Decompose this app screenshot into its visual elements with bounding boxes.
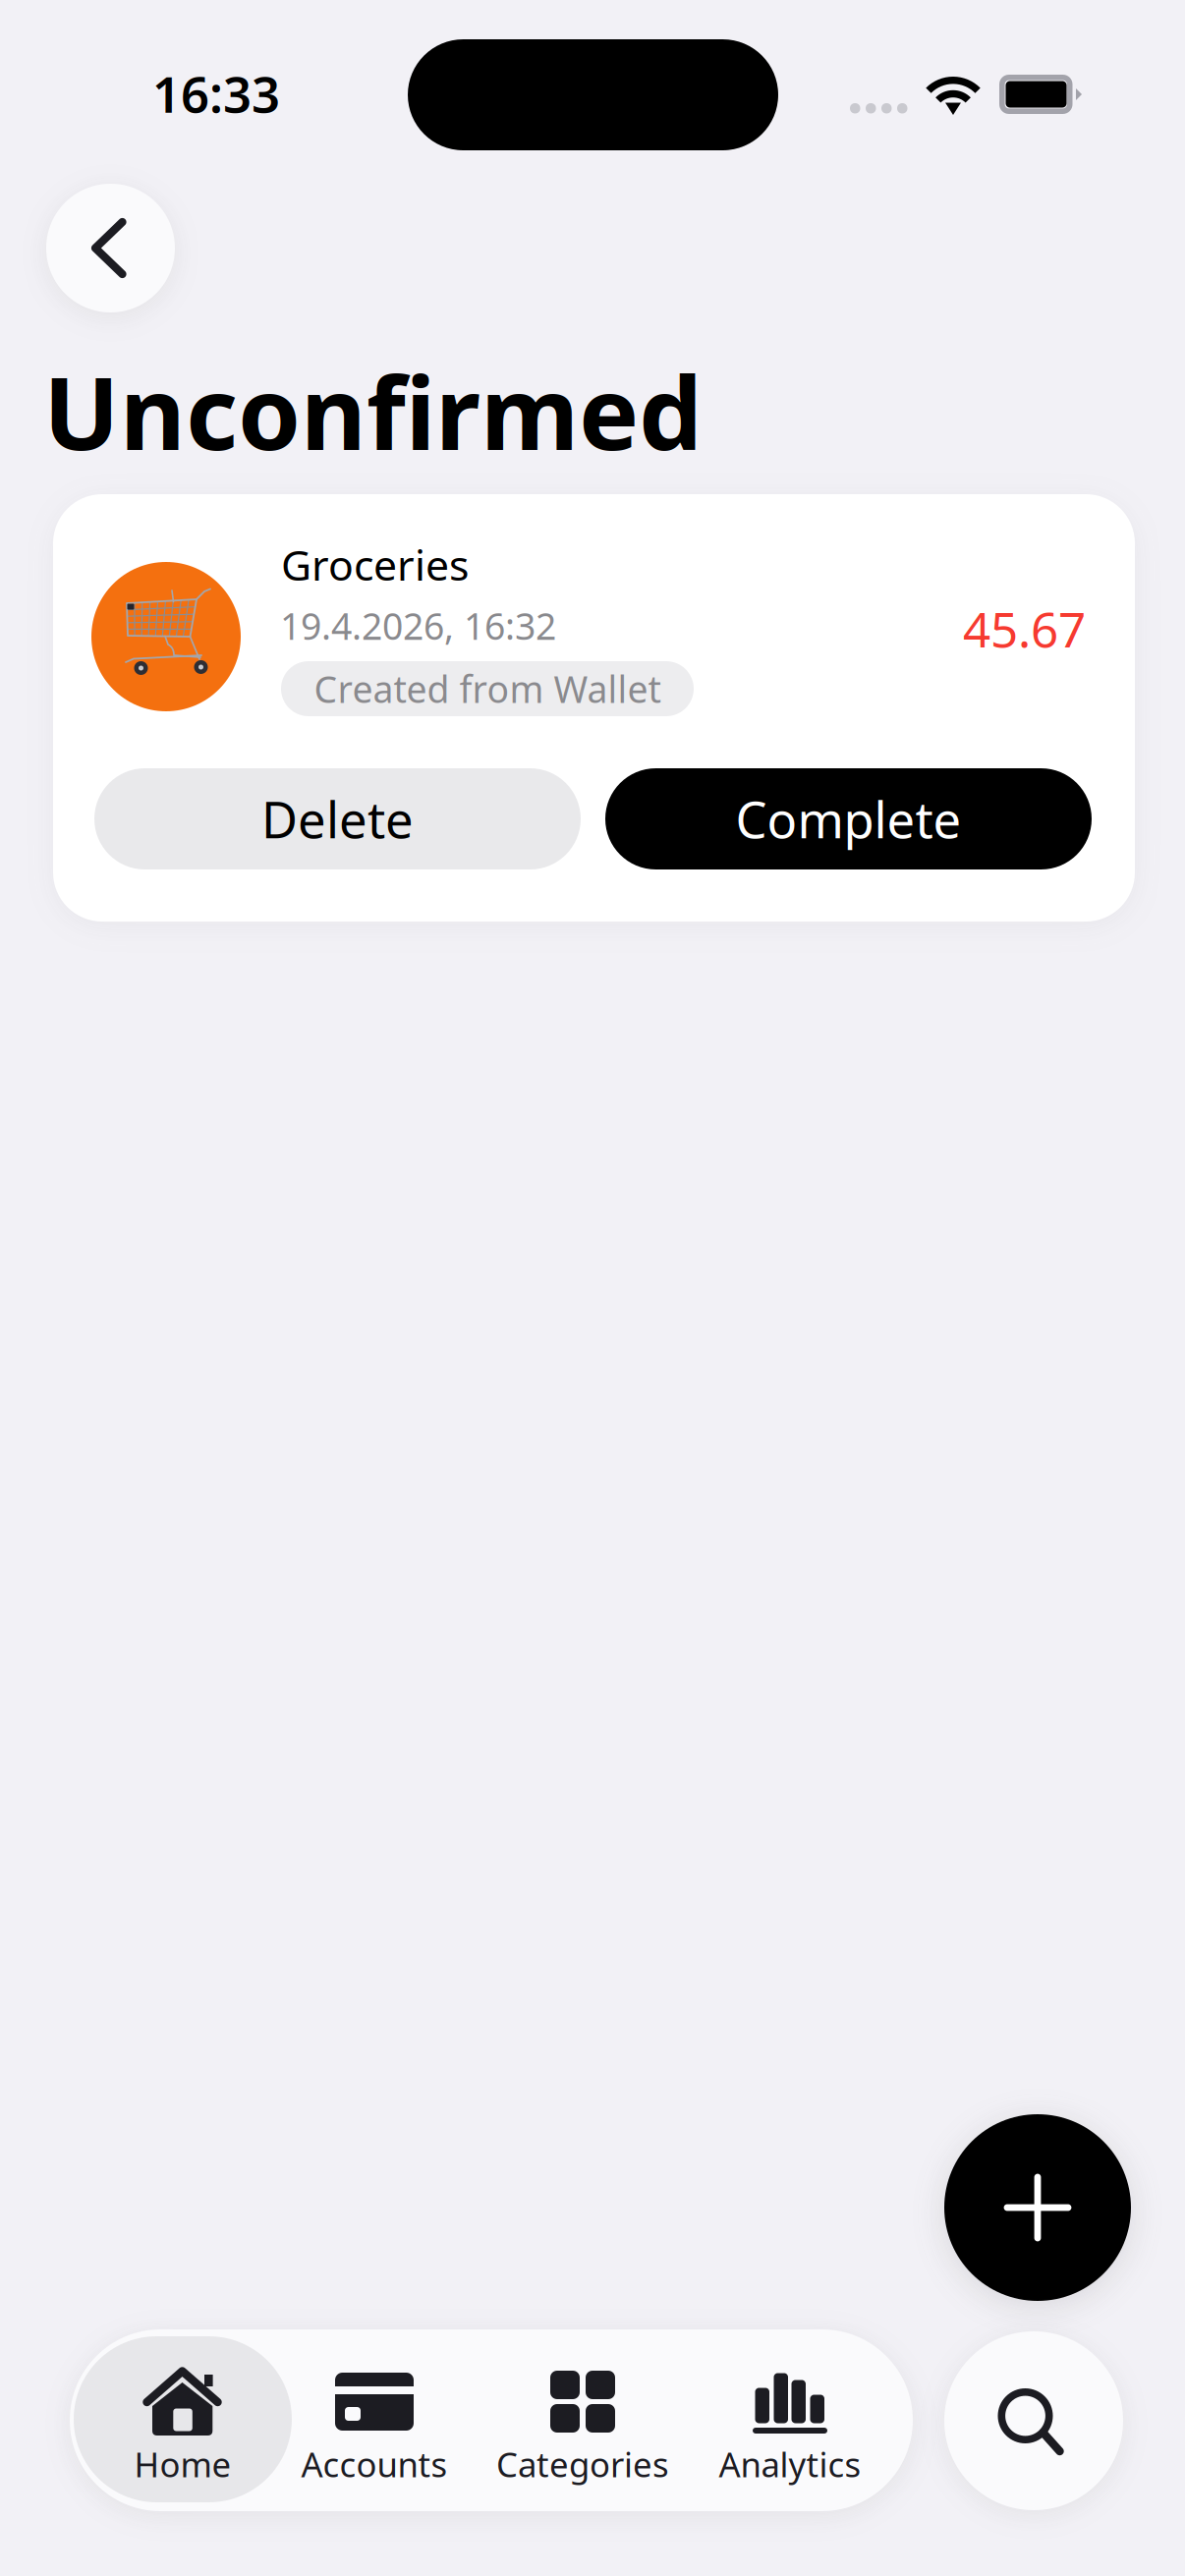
staticText: Complete <box>735 786 961 852</box>
button[interactable]: Categories <box>479 2336 687 2502</box>
staticText: Accounts <box>301 2441 448 2487</box>
button[interactable]: Back <box>46 184 175 312</box>
button[interactable]: Analytics <box>692 2336 888 2502</box>
staticText: 16:33 <box>152 60 280 126</box>
button[interactable]: Accounts <box>276 2336 473 2502</box>
button[interactable]: Add transaction <box>944 2114 1131 2301</box>
staticText: Groceries <box>281 536 469 592</box>
staticText: Analytics <box>719 2441 861 2487</box>
staticText: Home <box>134 2441 231 2487</box>
button[interactable]: Complete <box>605 768 1092 869</box>
staticText: Categories <box>496 2441 669 2487</box>
staticText: 19.4.2026, 16:32 <box>280 601 556 650</box>
staticText: Created from Wallet <box>314 664 661 713</box>
staticText: Delete <box>261 786 414 852</box>
button[interactable]: Search <box>944 2331 1123 2510</box>
button[interactable]: Home <box>74 2336 292 2502</box>
staticText: 45.67 <box>963 596 1086 661</box>
staticText: Unconfirmed <box>43 344 703 478</box>
button[interactable]: Delete <box>94 768 581 869</box>
